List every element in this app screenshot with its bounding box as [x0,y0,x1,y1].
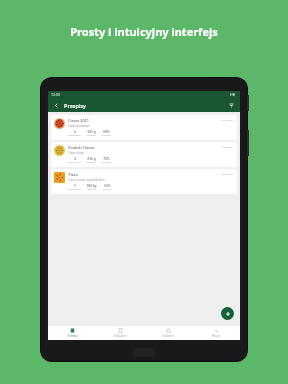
button[interactable]: Ulubione [144,326,192,340]
staticText: Ulubione [162,334,174,338]
staticText: Hydracja [102,188,112,191]
button[interactable]: Pizza [51,169,237,194]
staticText: 68% [103,130,110,134]
staticText: Prosty i intuicyjny interfejs [70,24,218,39]
button[interactable]: Więcej [192,326,240,340]
staticText: Ciasto 2021 [68,118,89,123]
staticText: 3 [74,184,76,188]
button[interactable]: Ciasto 2021 [51,115,237,140]
staticText: 17.02.2021 [221,145,234,148]
staticText: Hydracja [101,161,111,164]
staticText: 6 [74,130,76,134]
staticText: Poolish Classic [68,145,95,150]
staticText: 65% [104,184,111,188]
staticText: Ciasto z biga [68,151,84,155]
staticText: 180 kg [86,184,97,188]
button[interactable]: Poolish Classic [51,142,237,167]
staticText: Składniki [87,188,97,191]
staticText: 250 g [87,157,96,161]
staticText: Składniki [86,161,96,164]
button[interactable]: Back [52,101,61,110]
button[interactable]: Filter [227,101,236,110]
staticText: 4 [74,157,76,161]
button[interactable]: Add recipe [221,307,234,320]
staticText: Więcej [212,334,220,338]
staticText: Liczba porcji [68,161,81,164]
staticText: Pizza [68,172,78,177]
staticText: 01.01.2021 [221,118,234,121]
staticText: Kalkulator [114,334,127,338]
staticText: Ciasto drożdżowe [68,124,90,128]
staticText: 28.03.2021 [221,172,234,175]
staticText: Składniki [86,134,96,137]
staticText: 70% [103,157,110,161]
staticText: Ciasto w stylu neapolitańskim [68,178,105,182]
staticText: Liczba porcji [68,188,81,191]
staticText: Liczba porcji [68,134,81,137]
button[interactable]: Przepisy [48,326,96,340]
staticText: 300 g [87,130,96,134]
staticText: Hydracja [101,134,111,137]
staticText: 12:00 [51,92,60,97]
staticText: Przepisy [67,334,78,338]
staticText: Przepisy [64,102,86,109]
button[interactable]: Kalkulator [96,326,144,340]
